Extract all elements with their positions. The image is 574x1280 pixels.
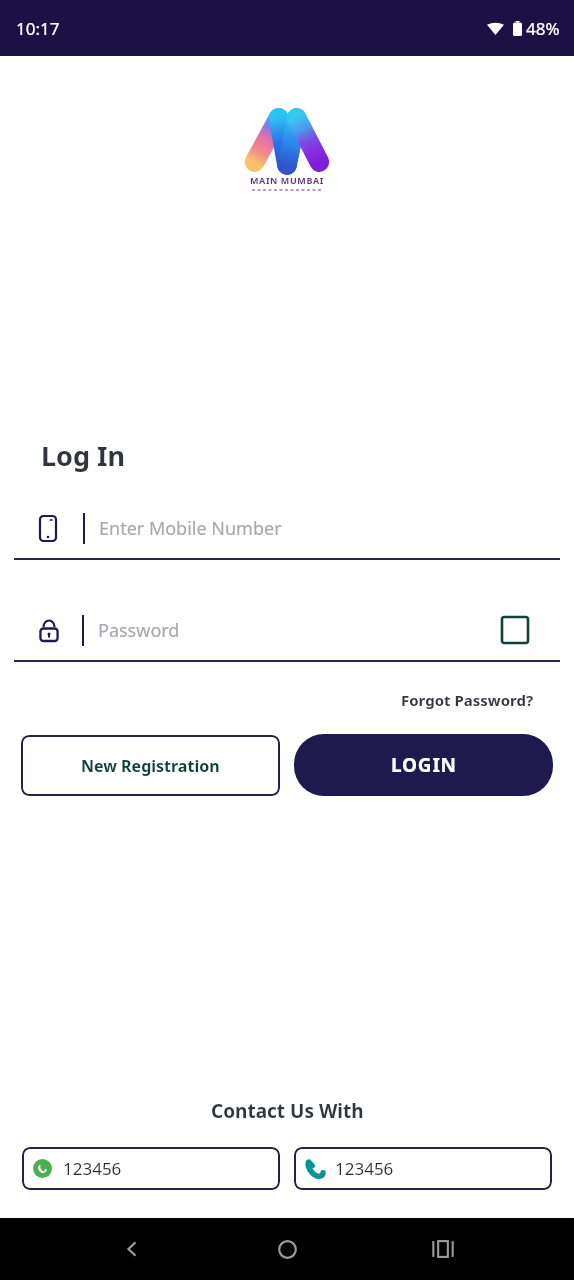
staticText: Password bbox=[98, 618, 180, 643]
staticText: LOGIN bbox=[391, 752, 457, 778]
staticText: Forgot Password? bbox=[401, 690, 534, 710]
staticText: New Registration bbox=[81, 755, 220, 777]
button[interactable]: New Registration bbox=[21, 735, 280, 796]
staticText: 10:17 bbox=[16, 17, 60, 40]
staticText: 123456 bbox=[63, 1157, 122, 1180]
button[interactable]: Forgot Password? bbox=[397, 686, 538, 714]
staticText: Contact Us With bbox=[211, 1098, 364, 1124]
button[interactable]: 123456 bbox=[22, 1147, 280, 1190]
button[interactable]: Back bbox=[108, 1225, 156, 1273]
button[interactable]: Recent apps bbox=[419, 1225, 467, 1273]
button[interactable]: LOGIN bbox=[294, 734, 553, 796]
button[interactable]: 123456 bbox=[294, 1147, 552, 1190]
staticText: 123456 bbox=[335, 1157, 394, 1180]
button[interactable]: Home bbox=[263, 1225, 311, 1273]
staticText: 48% bbox=[526, 17, 560, 40]
button[interactable]: Show password bbox=[502, 617, 528, 643]
staticText: Log In bbox=[41, 437, 126, 474]
button[interactable]: Enter Mobile Number bbox=[0, 498, 574, 558]
button[interactable]: Password bbox=[0, 600, 574, 660]
staticText: MAIN MUMBAI bbox=[250, 174, 324, 186]
staticText: Enter Mobile Number bbox=[99, 516, 282, 541]
